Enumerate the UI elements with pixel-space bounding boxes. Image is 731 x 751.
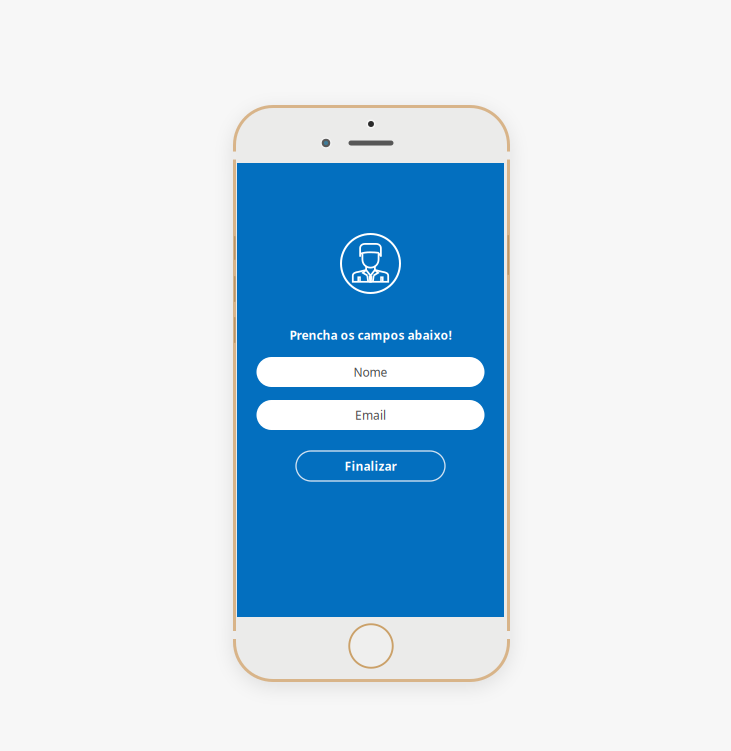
staticText: Prencha os campos abaixo! [289,327,451,343]
staticText: Nome [353,364,387,380]
staticText: Finalizar [344,458,396,474]
button[interactable]: Finalizar [296,451,445,481]
button[interactable]: Email [256,400,484,430]
button[interactable]: Nome [256,357,484,387]
staticText: Email [355,407,386,423]
